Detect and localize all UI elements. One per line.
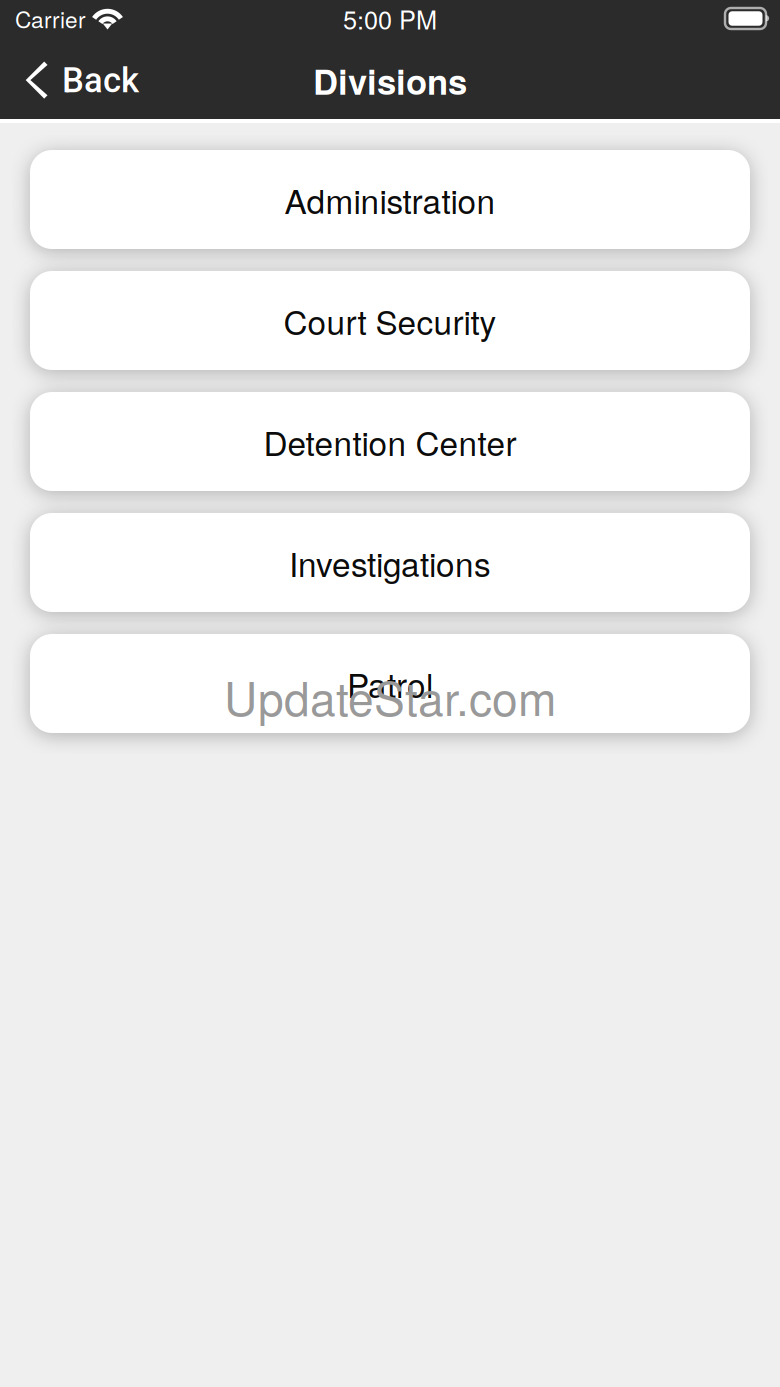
button[interactable]: Administration bbox=[30, 150, 750, 249]
staticText: Back bbox=[62, 60, 139, 101]
button[interactable]: Patrol bbox=[30, 634, 750, 733]
button[interactable]: Back bbox=[0, 50, 157, 111]
button[interactable]: Investigations bbox=[30, 513, 750, 612]
staticText: UpdateStar.com bbox=[224, 663, 556, 729]
button[interactable]: Court Security bbox=[30, 271, 750, 370]
staticText: 5:00 PM bbox=[343, 0, 437, 37]
button[interactable]: Detention Center bbox=[30, 392, 750, 491]
staticText: Patrol bbox=[347, 660, 433, 707]
staticText: Administration bbox=[284, 176, 495, 223]
staticText: Investigations bbox=[289, 539, 491, 586]
staticText: Divisions bbox=[313, 56, 467, 105]
staticText: Court Security bbox=[283, 297, 496, 344]
staticText: Detention Center bbox=[263, 418, 516, 465]
staticText: Carrier bbox=[15, 2, 86, 35]
